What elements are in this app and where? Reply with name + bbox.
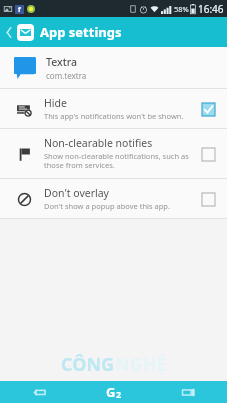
button[interactable]: Home — [79, 381, 149, 403]
staticText: Don't show a popup above this app. — [44, 201, 170, 211]
staticText: CÔNG — [61, 352, 115, 377]
staticText: 58% — [174, 4, 189, 14]
staticText: com.textra — [46, 70, 87, 81]
button[interactable]: Don't overlay — [0, 179, 227, 218]
button[interactable]: Checked — [199, 100, 217, 118]
button[interactable]: Hide — [0, 89, 227, 128]
button[interactable]: Back — [4, 381, 74, 403]
staticText: Show non-clearable notifications, such a… — [44, 151, 191, 171]
button[interactable]: Recents — [153, 381, 223, 403]
staticText: Don't overlay — [44, 186, 109, 200]
staticText: NGHỆ — [115, 352, 167, 377]
staticText: Textra — [46, 55, 77, 69]
button[interactable]: Textra — [0, 47, 227, 88]
button[interactable]: Back — [2, 18, 16, 46]
button[interactable]: Unchecked — [199, 145, 217, 163]
staticText: Non-clearable notifies — [44, 136, 153, 150]
staticText: Hide — [44, 96, 67, 110]
staticText: G — [106, 383, 116, 401]
button[interactable]: Non-clearable notifies — [0, 129, 227, 178]
staticText: This app's notifications won't be shown. — [44, 111, 184, 121]
button[interactable]: Unchecked — [199, 190, 217, 208]
staticText: App settings — [40, 23, 122, 41]
staticText: 16:46 — [198, 2, 224, 16]
staticText: 2 — [116, 388, 122, 400]
staticText: f — [18, 5, 21, 14]
